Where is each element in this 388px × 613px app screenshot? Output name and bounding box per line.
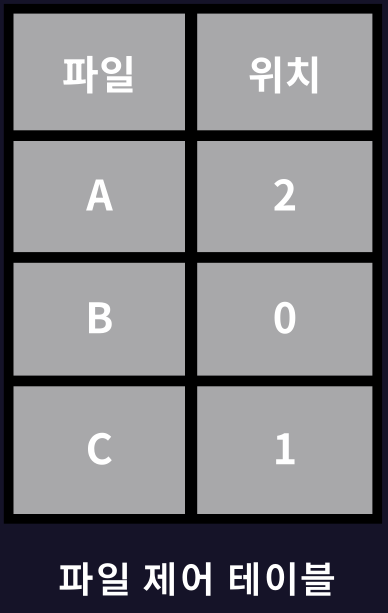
staticText: 파일	[62, 43, 136, 101]
staticText: A	[86, 163, 112, 222]
staticText: 1	[273, 416, 297, 476]
button[interactable]: B	[13, 263, 185, 376]
button[interactable]: 위치	[197, 14, 372, 130]
button[interactable]: A	[13, 141, 185, 252]
staticText: 0	[273, 285, 297, 345]
staticText: 위치	[248, 43, 322, 101]
button[interactable]: C	[13, 386, 185, 514]
staticText: 2	[273, 163, 297, 222]
button[interactable]: 1	[197, 386, 372, 514]
button[interactable]: 파일	[13, 14, 185, 130]
staticText: B	[85, 285, 113, 345]
button[interactable]: 2	[197, 141, 372, 252]
staticText: C	[86, 416, 113, 476]
staticText: 파일 제어 테이블	[58, 564, 336, 600]
button[interactable]: 0	[197, 263, 372, 376]
